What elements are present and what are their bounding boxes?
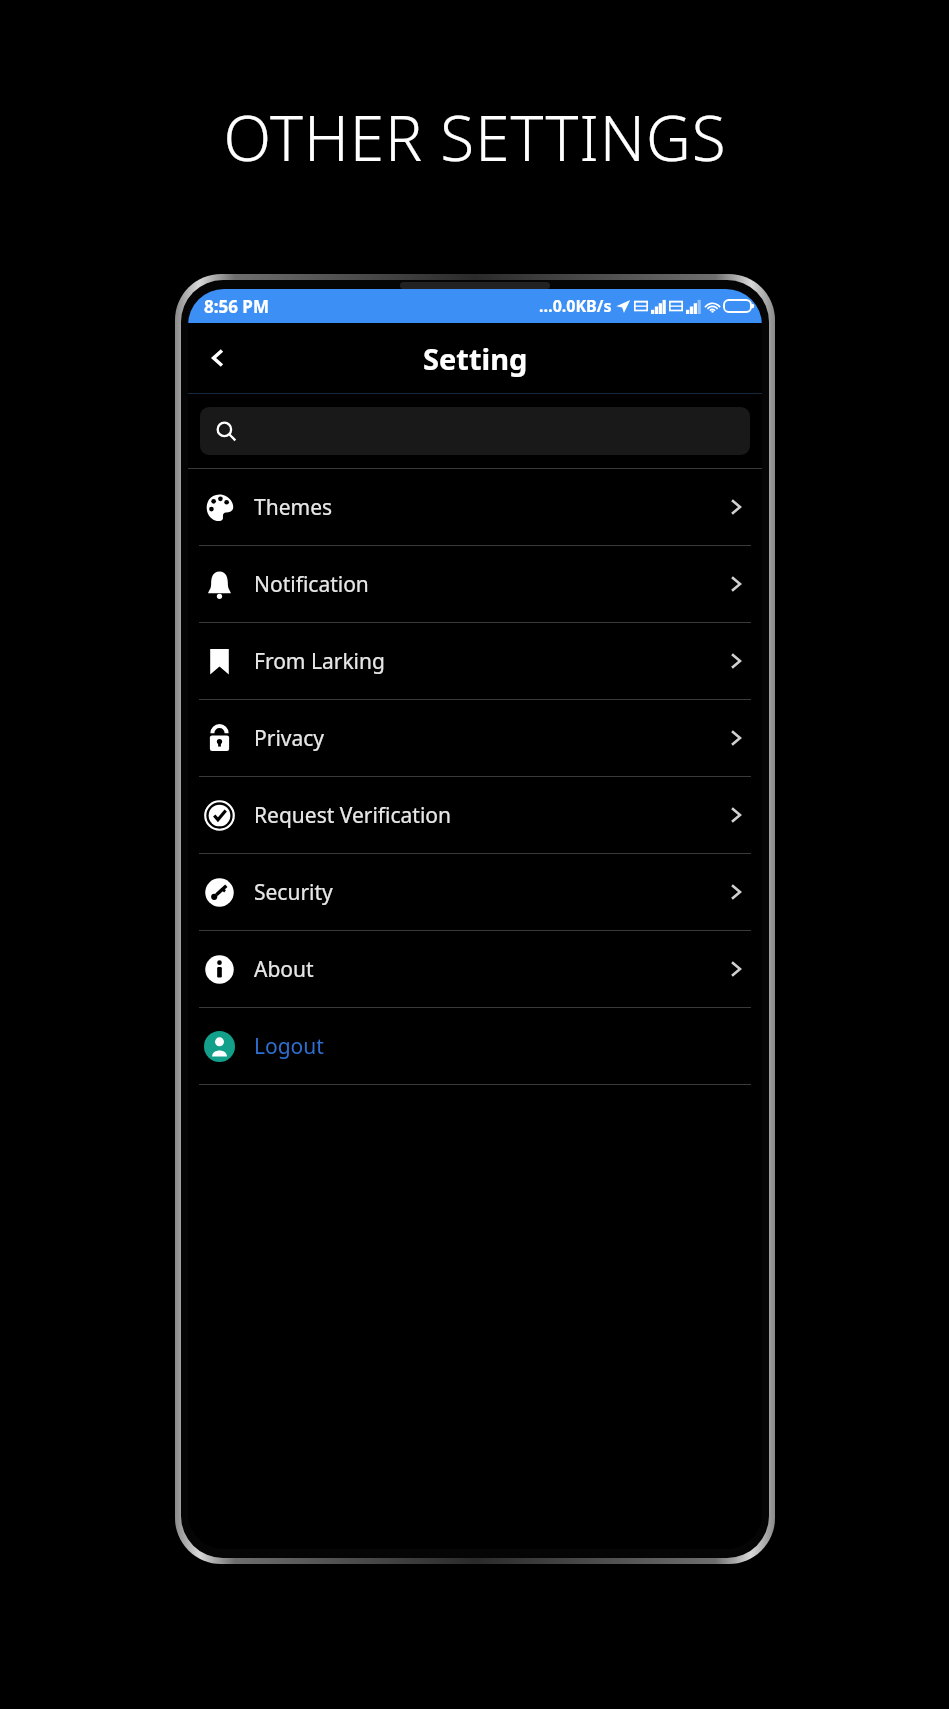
button[interactable]: From Larking: [188, 623, 762, 699]
button[interactable]: Back: [194, 334, 242, 382]
staticText: About: [254, 955, 726, 984]
button[interactable]: Request Verification: [188, 777, 762, 853]
button[interactable]: Privacy: [188, 700, 762, 776]
button[interactable]: Security: [188, 854, 762, 930]
staticText: OTHER SETTINGS: [223, 95, 727, 179]
staticText: 8:56 PM: [204, 295, 269, 318]
staticText: Themes: [254, 493, 726, 522]
button[interactable]: Themes: [188, 469, 762, 545]
staticText: Privacy: [254, 724, 726, 753]
staticText: Logout: [254, 1032, 746, 1061]
staticText: …0.0KB/s: [539, 295, 612, 317]
button[interactable]: Search: [200, 407, 750, 455]
staticText: Security: [254, 878, 726, 907]
staticText: Setting: [423, 339, 528, 378]
button[interactable]: About: [188, 931, 762, 1007]
button[interactable]: Logout: [188, 1008, 762, 1084]
staticText: From Larking: [254, 647, 726, 676]
staticText: Notification: [254, 570, 726, 599]
button[interactable]: Notification: [188, 546, 762, 622]
staticText: Request Verification: [254, 801, 726, 830]
